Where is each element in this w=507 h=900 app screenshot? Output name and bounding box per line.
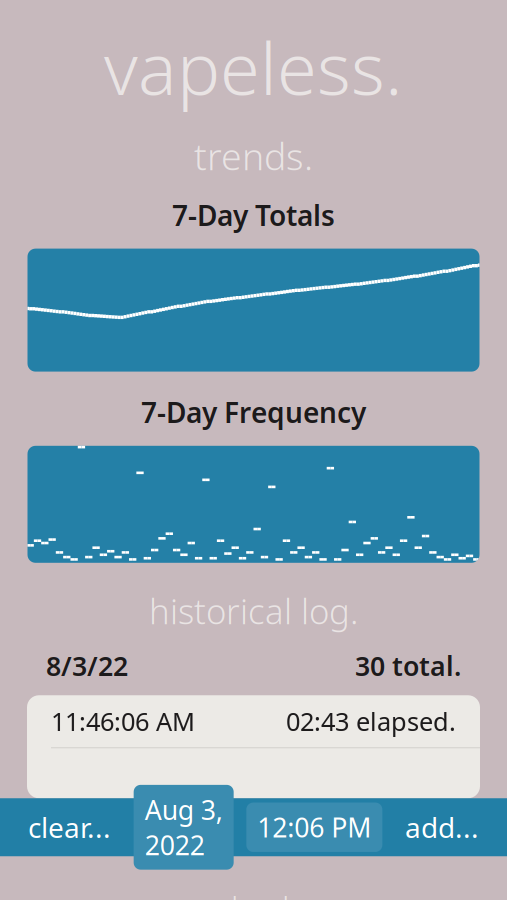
staticText: add... <box>405 809 479 846</box>
staticText: vapeless. <box>104 19 403 115</box>
staticText: 7-Day Totals <box>172 196 335 234</box>
staticText: 30 total. <box>355 648 461 683</box>
staticText: 7-Day Frequency <box>141 394 366 431</box>
button[interactable]: Aug 3, 2022 <box>134 785 234 870</box>
button[interactable]: clear... <box>18 801 121 854</box>
staticText: go back... <box>185 886 322 900</box>
staticText: trends. <box>194 131 313 180</box>
staticText: 02:43 elapsed. <box>286 704 456 738</box>
staticText: clear... <box>28 809 111 846</box>
button[interactable]: add... <box>395 801 489 854</box>
button[interactable]: 11:46:06 AM <box>27 695 480 747</box>
staticText: 11:46:06 AM <box>51 704 195 738</box>
staticText: historical log. <box>149 588 358 634</box>
staticText: 12:06 PM <box>257 809 371 845</box>
button[interactable]: 12:06 PM <box>246 802 382 852</box>
staticText: 8/3/22 <box>46 648 128 683</box>
staticText: Aug 3, 2022 <box>145 792 223 863</box>
